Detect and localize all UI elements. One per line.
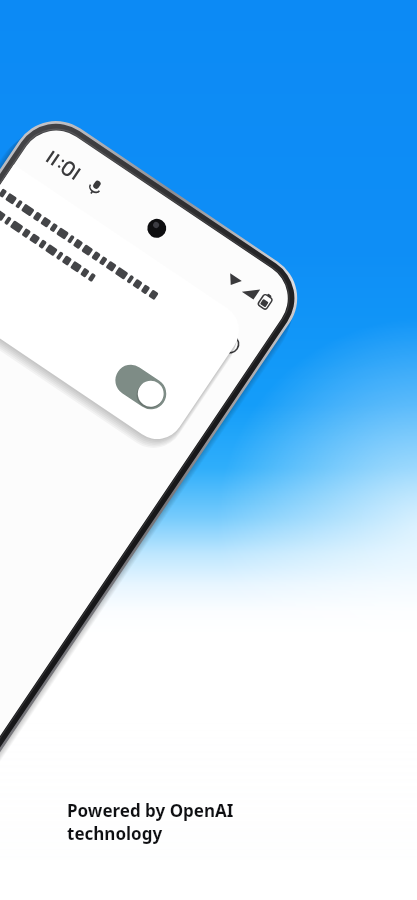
button[interactable]: Powered by OpenAI — [67, 799, 234, 845]
button[interactable]: Notification count — [252, 305, 282, 335]
staticText: Powered by OpenAI — [67, 799, 234, 822]
staticText: technology — [67, 822, 163, 845]
